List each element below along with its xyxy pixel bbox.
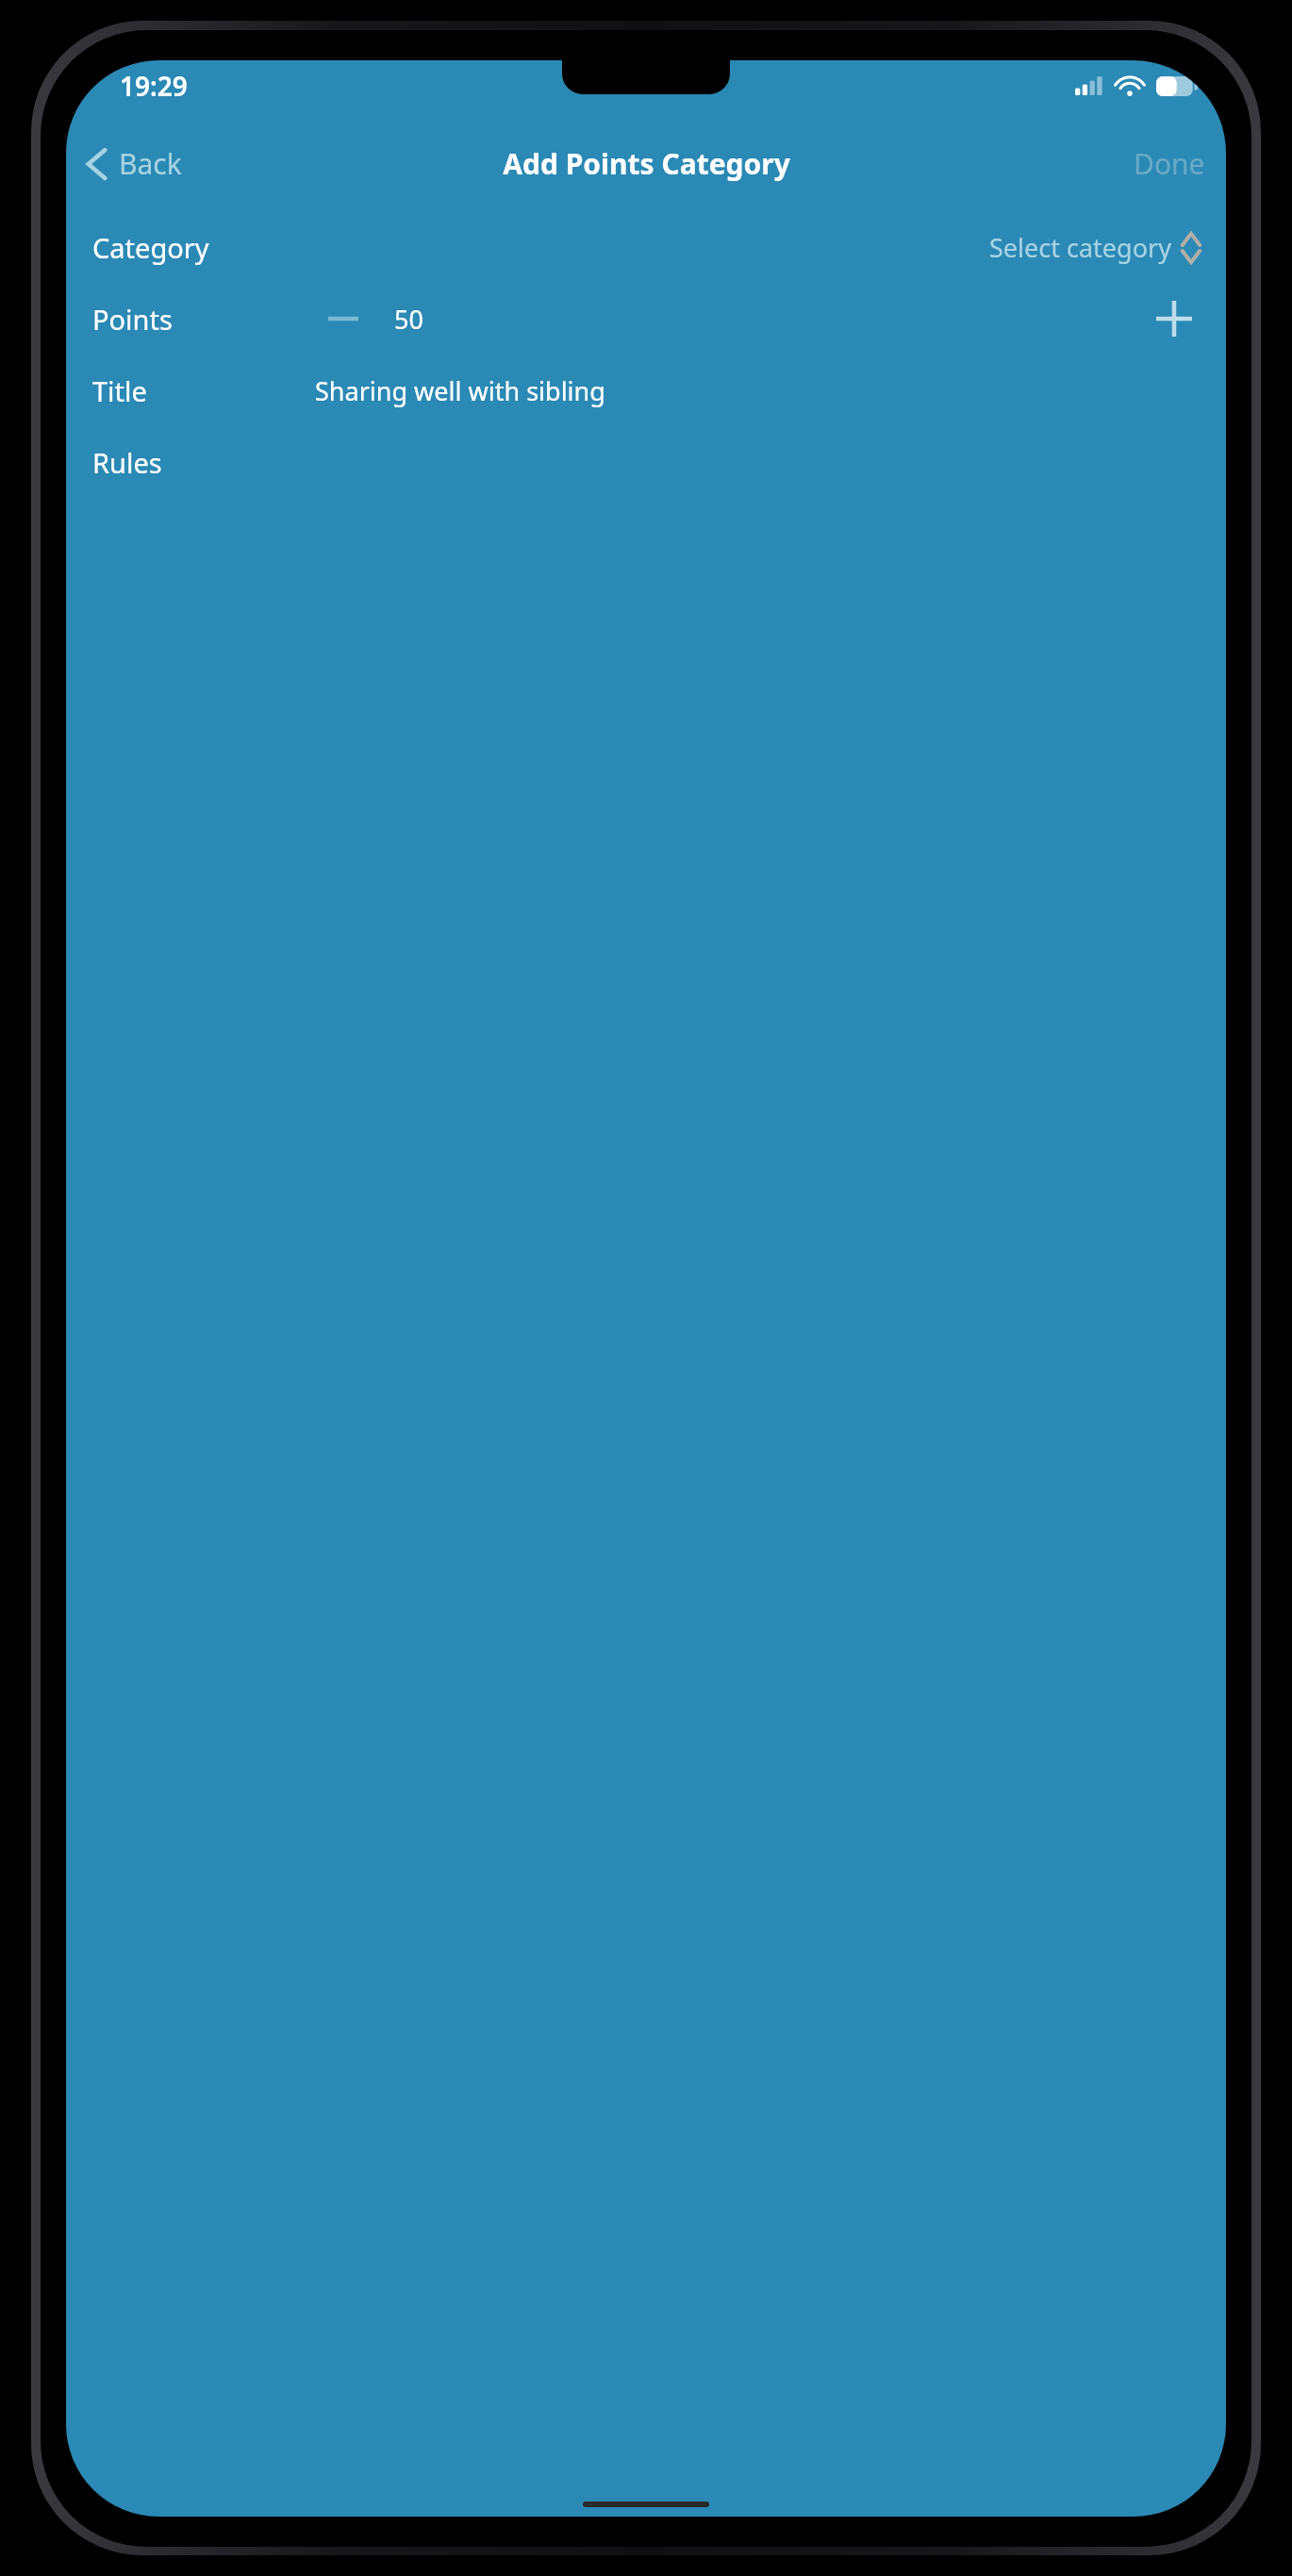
staticText: Category	[92, 229, 209, 266]
staticText: Title	[92, 372, 147, 409]
button[interactable]: Select category	[989, 230, 1201, 265]
button[interactable]: Sharing well with sibling	[281, 373, 1201, 408]
staticText: 50	[394, 302, 423, 337]
staticText: 19:29	[120, 68, 188, 104]
staticText: Points	[92, 301, 173, 338]
button[interactable]: Increase points	[1147, 291, 1201, 346]
button[interactable]: Title	[66, 355, 1226, 426]
staticText: Done	[1134, 144, 1205, 183]
button[interactable]: Rules	[66, 426, 1226, 498]
button[interactable]: Back	[85, 144, 182, 183]
staticText: Back	[119, 144, 182, 183]
button[interactable]: Category	[66, 211, 1226, 283]
button[interactable]: Done	[1134, 144, 1205, 183]
button[interactable]: Points	[66, 283, 1226, 355]
staticText: Rules	[92, 444, 162, 481]
button[interactable]: Decrease points	[319, 294, 368, 343]
staticText: Add Points Category	[503, 144, 790, 183]
staticText: Sharing well with sibling	[315, 373, 605, 408]
staticText: Select category	[989, 230, 1171, 265]
